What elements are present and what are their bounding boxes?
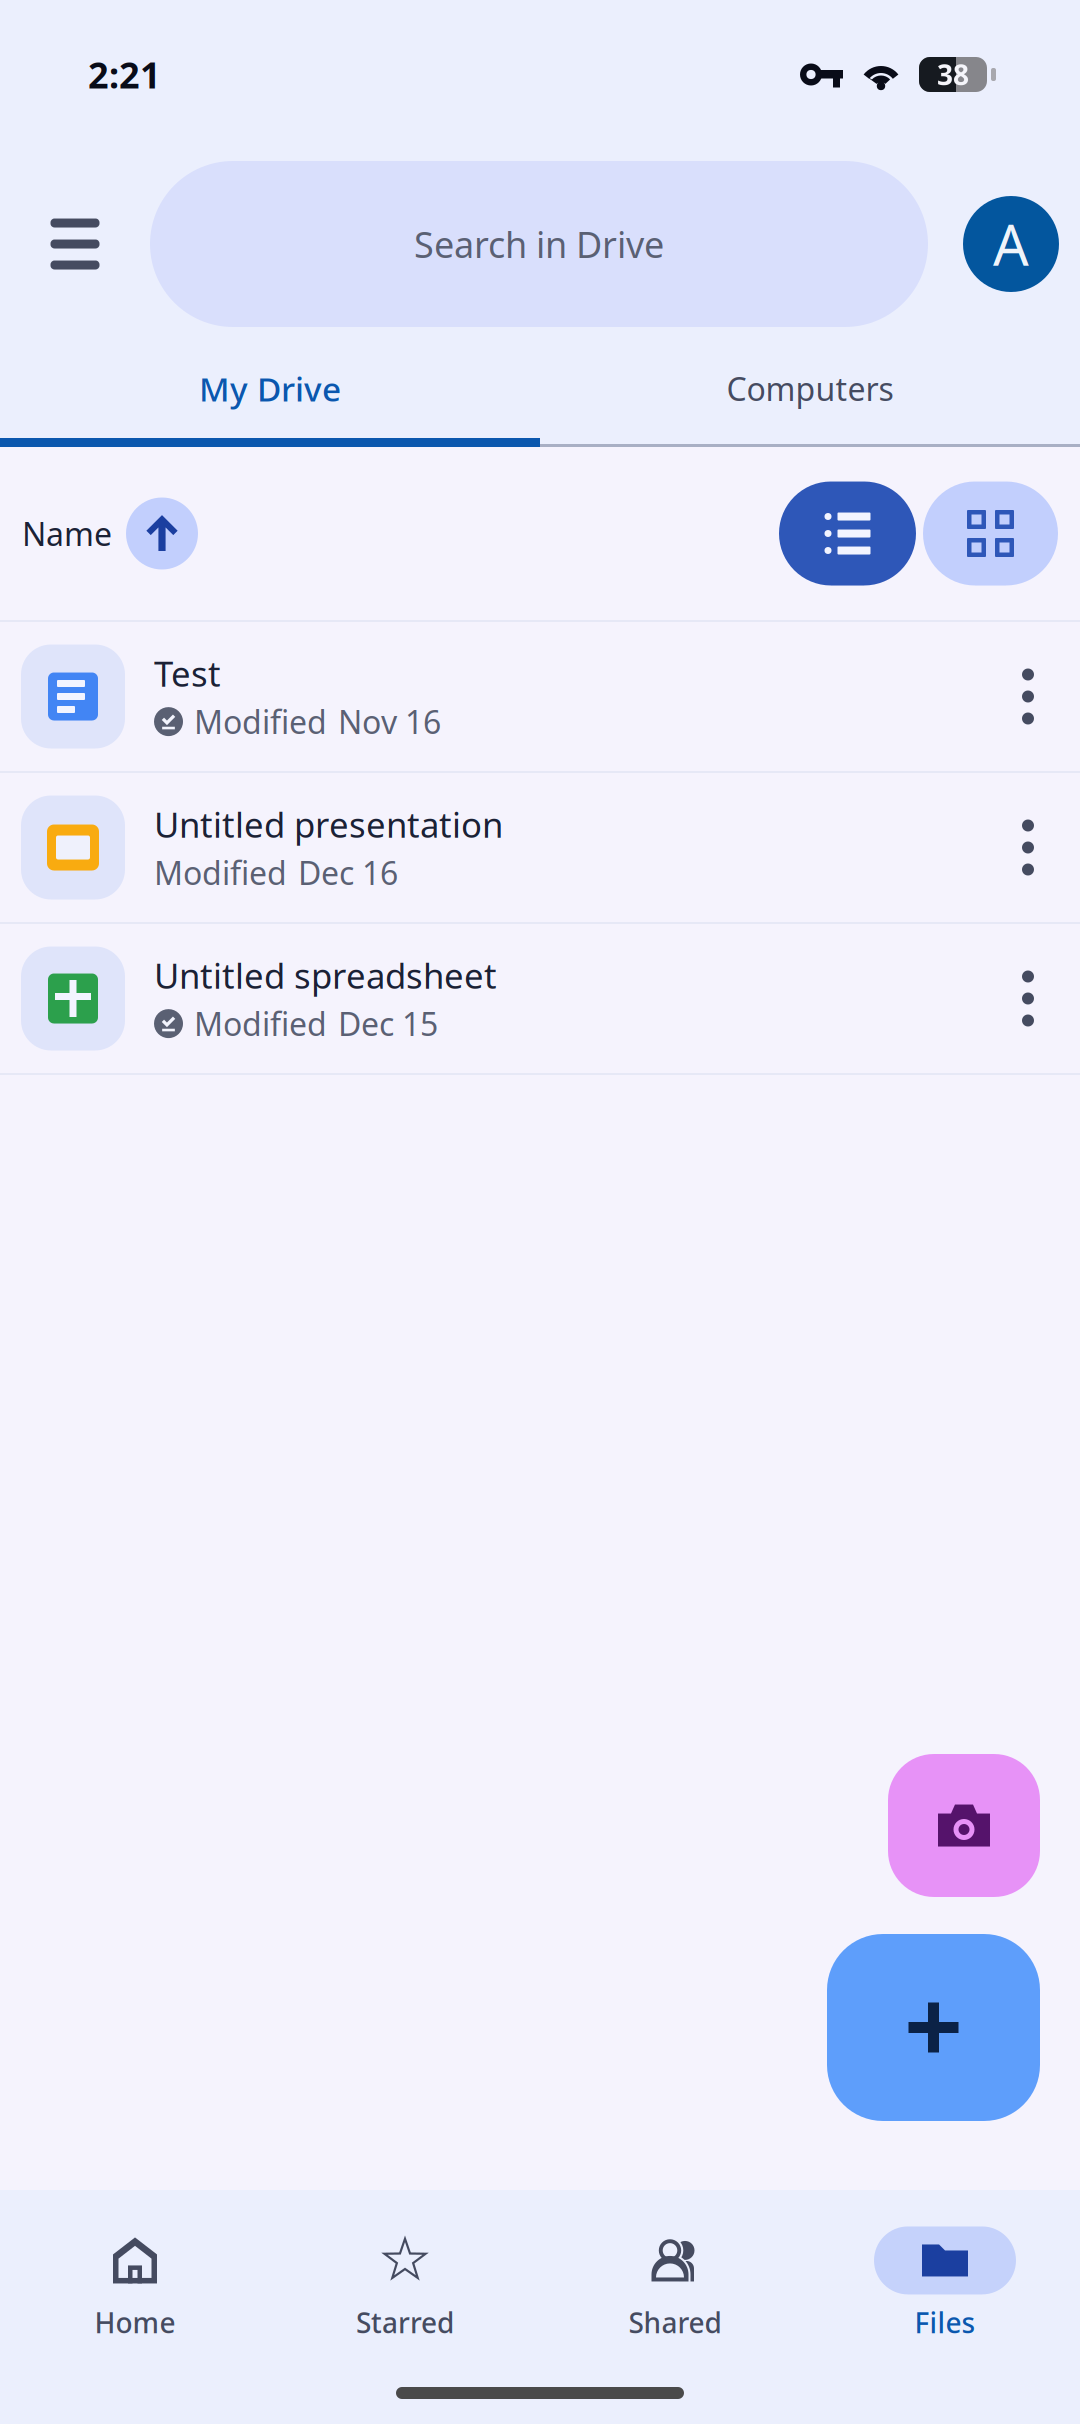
staticText: 38 <box>937 55 969 93</box>
button[interactable]: Account <box>942 149 1080 339</box>
staticText: 2:21 <box>88 50 161 99</box>
staticText: Computers <box>726 367 893 410</box>
button[interactable]: Open navigation menu <box>0 149 150 339</box>
button[interactable]: Test <box>0 622 1080 771</box>
staticText: Search in Drive <box>414 219 664 268</box>
button[interactable]: Untitled presentation <box>0 773 1080 922</box>
button[interactable]: Search in Drive <box>150 149 928 339</box>
button[interactable]: List view <box>779 481 916 585</box>
button[interactable]: Computers <box>540 339 1080 438</box>
button[interactable]: Shared <box>540 2211 810 2356</box>
button[interactable]: Files <box>810 2211 1080 2356</box>
button[interactable]: Scan with camera <box>888 1754 1040 1897</box>
staticText: Shared <box>628 2303 721 2341</box>
staticText: A <box>993 206 1029 282</box>
staticText: Untitled spreadsheet <box>154 952 497 999</box>
button[interactable]: Grid view <box>923 481 1058 585</box>
staticText: Home <box>94 2303 175 2341</box>
staticText: Modified <box>194 700 327 743</box>
button[interactable]: Home <box>0 2211 270 2356</box>
button[interactable]: My Drive <box>0 339 540 438</box>
staticText: Dec 16 <box>298 851 398 894</box>
staticText: Starred <box>356 2303 454 2341</box>
staticText: My Drive <box>199 366 341 411</box>
staticText: Name <box>22 512 112 555</box>
staticText: Modified <box>154 851 287 894</box>
button[interactable]: Name <box>0 447 212 620</box>
button[interactable]: Untitled spreadsheet <box>0 924 1080 1073</box>
staticText: Untitled presentation <box>154 801 503 848</box>
button[interactable]: Starred <box>270 2211 540 2356</box>
staticText: Test <box>154 650 221 697</box>
staticText: Dec 15 <box>338 1002 438 1045</box>
button[interactable]: New <box>827 1934 1040 2121</box>
staticText: Modified <box>194 1002 327 1045</box>
staticText: Nov 16 <box>338 700 441 743</box>
staticText: Files <box>914 2303 975 2341</box>
